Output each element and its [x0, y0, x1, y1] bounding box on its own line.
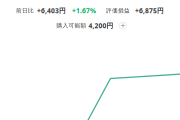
staticText: 購入可能額: [56, 22, 86, 29]
staticText: +6,403円: [37, 6, 66, 15]
staticText: 4,200円: [88, 21, 113, 30]
staticText: +1.67%: [72, 6, 96, 15]
button[interactable]: 入金する: [118, 21, 127, 30]
staticText: +6,875円: [135, 6, 164, 15]
staticText: 前日比: [16, 7, 34, 14]
staticText: 評価損益: [106, 7, 130, 14]
